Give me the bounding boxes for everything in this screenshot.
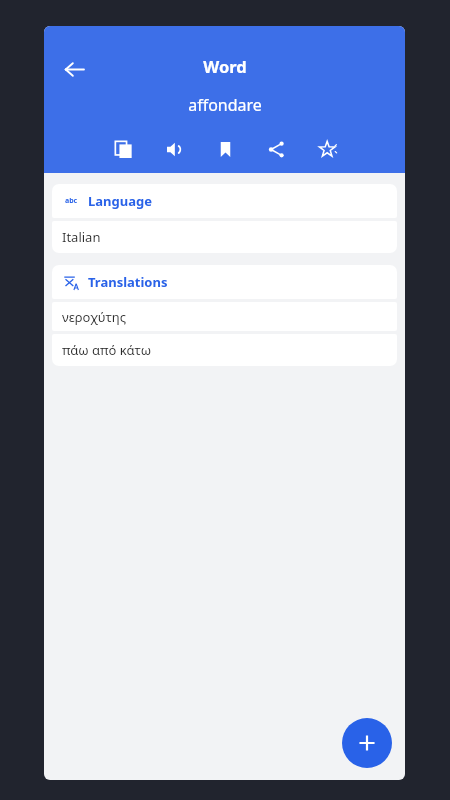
staticText: affondare [188,94,262,116]
button[interactable]: πάω από κάτω [52,334,397,366]
staticText: Word [203,55,247,77]
button[interactable]: Add [342,718,392,768]
button[interactable]: abc [52,184,397,218]
staticText: νεροχύτης [62,308,127,326]
button[interactable]: Copy [107,133,139,165]
staticText: Language [88,192,152,210]
button[interactable]: Italian [52,221,397,253]
button[interactable]: νεροχύτης [52,302,397,331]
button[interactable]: Translations [52,265,397,299]
button[interactable]: Back [54,49,94,89]
button[interactable]: Bookmark [209,133,241,165]
staticText: Translations [88,273,168,291]
button[interactable]: Pronounce [158,133,190,165]
staticText: πάω από κάτω [62,341,152,359]
staticText: Italian [62,228,101,246]
button[interactable]: Share [260,133,292,165]
button[interactable]: Favorite [311,133,343,165]
staticText: abc [65,196,78,206]
